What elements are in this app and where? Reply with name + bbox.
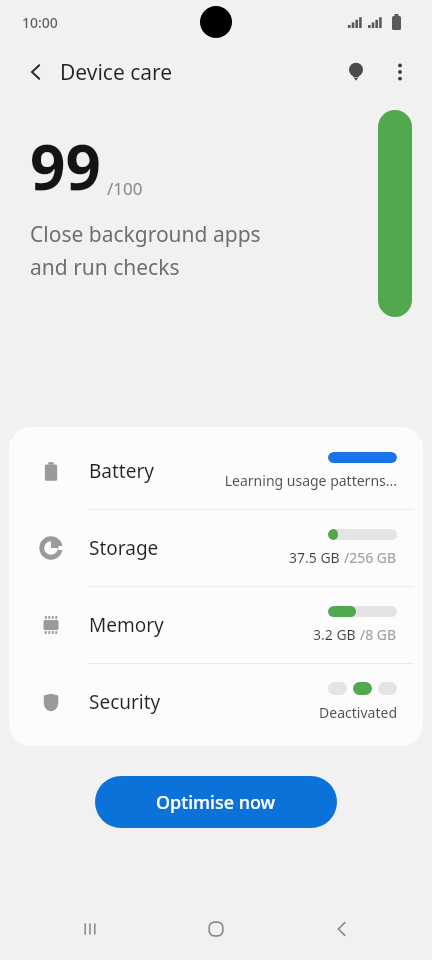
staticText: Device care: [60, 58, 173, 87]
staticText: 3.2 GB: [313, 625, 360, 644]
staticText: /8 GB: [360, 625, 397, 644]
staticText: Security: [89, 689, 161, 715]
staticText: 99: [30, 124, 101, 208]
staticText: Close background apps: [30, 220, 261, 249]
button[interactable]: Back: [14, 50, 58, 94]
staticText: Learning usage patterns...: [224, 471, 397, 490]
staticText: Optimise now: [156, 790, 276, 815]
staticText: Storage: [89, 535, 159, 561]
button[interactable]: Memory: [9, 587, 423, 664]
button[interactable]: Recent apps: [54, 905, 126, 953]
staticText: /100: [107, 177, 143, 200]
staticText: 37.5 GB: [289, 548, 344, 567]
button[interactable]: Home: [180, 905, 252, 953]
staticText: Battery: [89, 458, 154, 484]
staticText: 10:00: [22, 13, 58, 32]
button[interactable]: Storage: [9, 510, 423, 587]
button[interactable]: Tips: [334, 50, 378, 94]
staticText: Memory: [89, 612, 164, 638]
button[interactable]: Optimise now: [95, 776, 337, 828]
button[interactable]: Battery: [9, 433, 423, 510]
staticText: /256 GB: [344, 548, 397, 567]
button[interactable]: Back: [306, 905, 378, 953]
button[interactable]: Security: [9, 664, 423, 740]
staticText: and run checks: [30, 253, 180, 282]
button[interactable]: More options: [378, 50, 422, 94]
staticText: Deactivated: [319, 703, 397, 722]
